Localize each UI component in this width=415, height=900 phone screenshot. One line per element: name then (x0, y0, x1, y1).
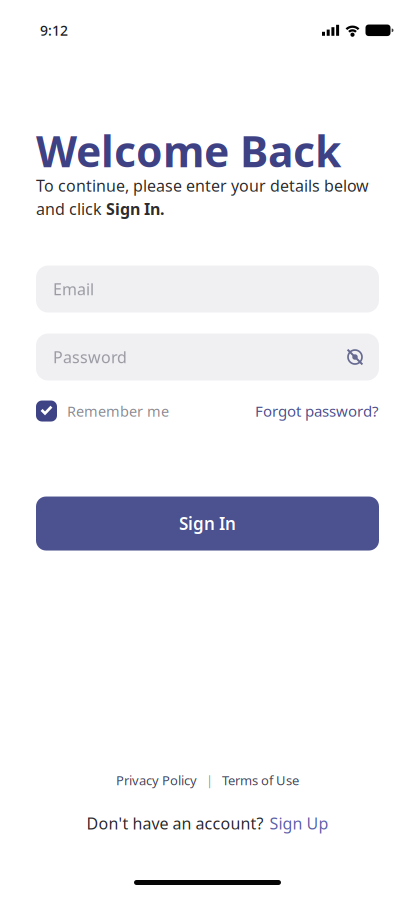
staticText: Password (53, 346, 127, 368)
staticText: 9:12 (40, 21, 68, 40)
staticText: Email (53, 278, 94, 300)
staticText: Forgot password? (255, 401, 379, 421)
button[interactable]: Remember me (36, 400, 169, 421)
button[interactable]: Terms of Use (222, 771, 299, 789)
staticText: Welcome Back (36, 123, 341, 179)
staticText: Remember me (67, 401, 169, 421)
staticText: Sign In. (106, 198, 164, 219)
staticText: Privacy Policy (116, 771, 197, 789)
staticText: Sign Up (269, 813, 328, 834)
staticText: Sign In (179, 512, 236, 535)
button[interactable]: Privacy Policy (116, 771, 197, 789)
staticText: and click (36, 198, 106, 219)
button[interactable]: Sign Up (269, 813, 328, 834)
staticText: Don't have an account? (86, 813, 263, 834)
button[interactable]: Email text field (36, 265, 379, 312)
button[interactable]: Sign In (36, 496, 379, 550)
button[interactable]: Password text field (36, 333, 379, 380)
staticText: | (206, 771, 213, 789)
staticText: Terms of Use (222, 771, 299, 789)
button[interactable]: Forgot password? (255, 401, 379, 421)
button[interactable]: Show password (346, 348, 379, 366)
staticText: To continue, please enter your details b… (36, 175, 369, 196)
